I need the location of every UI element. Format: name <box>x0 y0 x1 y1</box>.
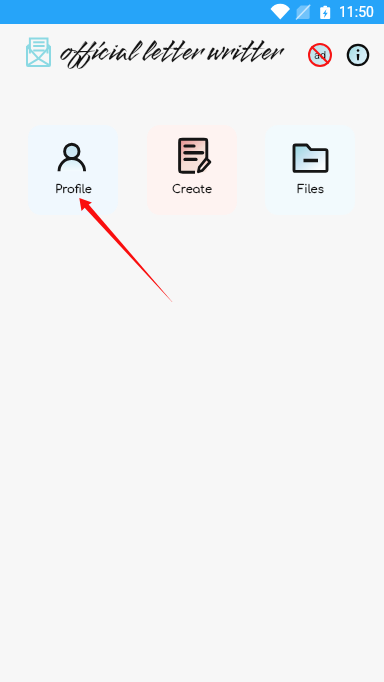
staticText: Files <box>297 183 324 196</box>
staticText: Create <box>172 183 212 196</box>
staticText: Profile <box>55 183 92 196</box>
button[interactable]: Files <box>265 125 355 215</box>
button[interactable]: Information <box>342 39 374 71</box>
staticText: official letter writter <box>59 31 281 73</box>
staticText: 11:50 <box>339 4 374 20</box>
button[interactable]: Profile <box>28 125 118 215</box>
button[interactable]: Remove ads <box>304 39 336 71</box>
button[interactable]: App logo <box>18 32 58 72</box>
button[interactable]: Create <box>147 125 237 215</box>
staticText: ad <box>314 49 327 62</box>
